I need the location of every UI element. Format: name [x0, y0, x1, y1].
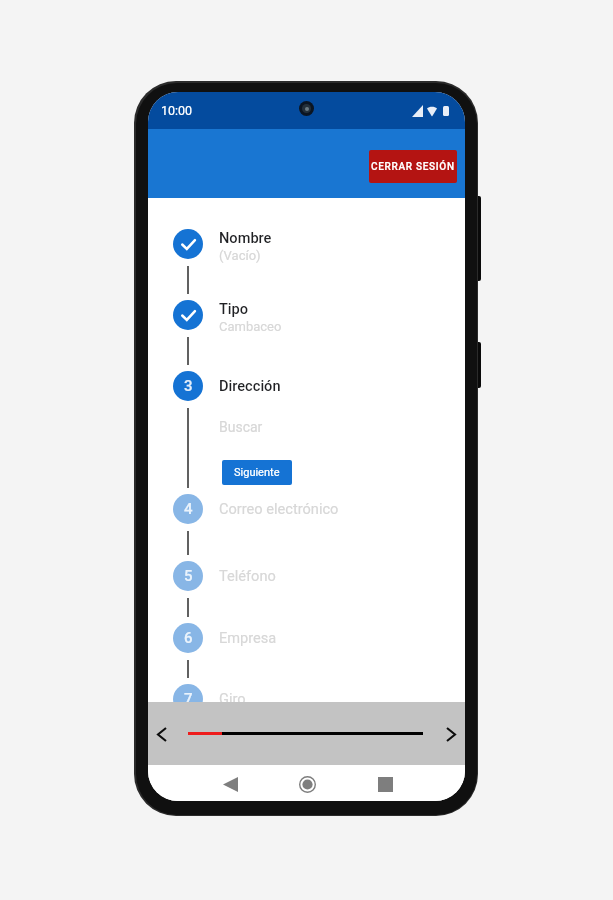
staticText: Buscar	[219, 419, 263, 435]
staticText: Tipo	[219, 300, 249, 317]
staticText: (Vacío)	[219, 248, 261, 263]
staticText: 4	[184, 500, 193, 518]
button[interactable]: CERRAR SESIÓN	[369, 150, 457, 183]
button[interactable]: Back	[213, 767, 247, 801]
staticText: Dirección	[219, 377, 281, 394]
button[interactable]: Home	[290, 767, 324, 801]
staticText: Teléfono	[219, 567, 276, 584]
staticText: 6	[184, 629, 193, 647]
button[interactable]: Step 7	[173, 684, 203, 714]
button[interactable]: Step 1	[173, 229, 203, 259]
button[interactable]: Step 5	[173, 561, 203, 591]
button[interactable]: Recents	[368, 767, 402, 801]
button[interactable]: Next	[434, 717, 465, 751]
staticText: 7	[184, 690, 193, 708]
staticText: CERRAR SESIÓN	[371, 161, 455, 173]
staticText: 3	[184, 377, 193, 395]
button[interactable]: Step 2	[173, 300, 203, 330]
staticText: Nombre	[219, 229, 272, 246]
staticText: Empresa	[219, 629, 277, 646]
staticText: 5	[184, 567, 193, 585]
staticText: Siguiente	[234, 466, 280, 479]
button[interactable]: Previous	[148, 717, 179, 751]
button[interactable]: Step 3	[173, 371, 203, 401]
button[interactable]: Siguiente	[222, 460, 292, 485]
staticText: Giro	[219, 690, 246, 707]
button[interactable]: Step 6	[173, 623, 203, 653]
button[interactable]: Step 4	[173, 494, 203, 524]
staticText: 10:00	[161, 103, 193, 118]
staticText: Cambaceo	[219, 319, 282, 334]
staticText: Correo electrónico	[219, 500, 339, 517]
